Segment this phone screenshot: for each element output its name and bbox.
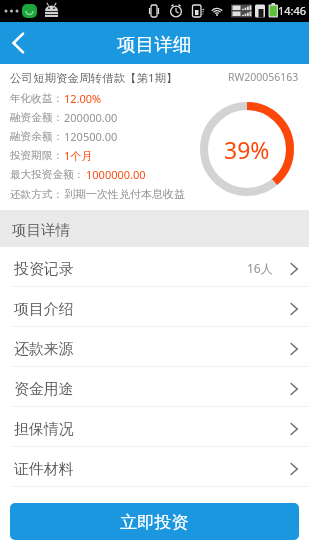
staticText: 120500.00 <box>64 129 118 144</box>
staticText: 投资期限： <box>10 149 63 162</box>
staticText: 12.00% <box>64 91 102 106</box>
staticText: 项目详情 <box>12 221 70 239</box>
button[interactable]: 证件材料 <box>0 447 309 487</box>
staticText: 项目介绍 <box>14 300 74 319</box>
button[interactable]: 立即投资 <box>10 503 299 540</box>
button[interactable]: 担保情况 <box>0 407 309 447</box>
staticText: 还款方式： <box>10 188 63 201</box>
staticText: 融资金额： <box>10 111 63 124</box>
staticText: 立即投资 <box>120 511 189 533</box>
staticText: 39% <box>224 134 270 165</box>
button[interactable]: Back <box>0 22 36 64</box>
button[interactable]: 投资记录 <box>0 247 309 287</box>
staticText: RW200056163 <box>228 70 299 84</box>
staticText: 14:46 <box>278 3 307 18</box>
staticText: 担保情况 <box>14 420 74 439</box>
staticText: 还款来源 <box>14 340 74 359</box>
button[interactable]: 项目介绍 <box>0 287 309 327</box>
staticText: 200000.00 <box>64 110 118 125</box>
staticText: 融资余额： <box>10 130 63 143</box>
staticText: 1000000.00 <box>86 167 146 182</box>
staticText: 证件材料 <box>14 460 74 479</box>
staticText: 最大投资金额： <box>10 168 85 181</box>
button[interactable]: 资金用途 <box>0 367 309 407</box>
staticText: 投资记录 <box>14 260 74 279</box>
staticText: 年化收益： <box>10 92 63 105</box>
staticText: 公司短期资金周转借款【第1期】 <box>10 70 178 86</box>
staticText: 16人 <box>247 260 273 276</box>
staticText: 到期一次性兑付本息收益 <box>64 187 185 201</box>
staticText: 资金用途 <box>14 380 74 399</box>
staticText: 1个月 <box>64 148 93 163</box>
staticText: 项目详细 <box>117 33 192 56</box>
button[interactable]: 还款来源 <box>0 327 309 367</box>
